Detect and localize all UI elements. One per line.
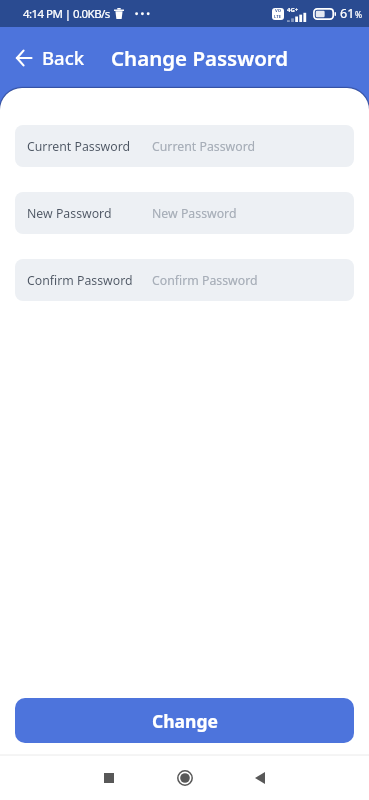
button[interactable]: Current Password — [15, 125, 354, 167]
staticText: VO — [275, 8, 281, 14]
staticText: % — [355, 9, 363, 21]
staticText: Confirm Password — [152, 272, 258, 289]
button[interactable]: Home — [159, 755, 211, 800]
staticText: LTE — [274, 14, 282, 20]
button[interactable]: Confirm Password — [15, 259, 354, 301]
button[interactable]: Back — [234, 755, 286, 800]
button[interactable]: New Password — [15, 192, 354, 234]
staticText: Confirm Password — [27, 272, 133, 289]
staticText: Back — [42, 45, 85, 70]
button[interactable]: Recents — [83, 755, 135, 800]
staticText: New Password — [27, 205, 112, 222]
staticText: New Password — [152, 205, 237, 222]
staticText: Change — [152, 709, 218, 733]
staticText: Change Password — [111, 44, 289, 72]
button[interactable]: Back — [10, 37, 91, 78]
staticText: 61 — [340, 5, 355, 22]
button[interactable]: Change — [15, 698, 354, 743]
staticText: Current Password — [27, 138, 131, 155]
staticText: Current Password — [152, 138, 256, 155]
staticText: 4:14 PM | 0.0KB/s — [23, 6, 110, 22]
staticText: 4G+ — [287, 6, 299, 14]
